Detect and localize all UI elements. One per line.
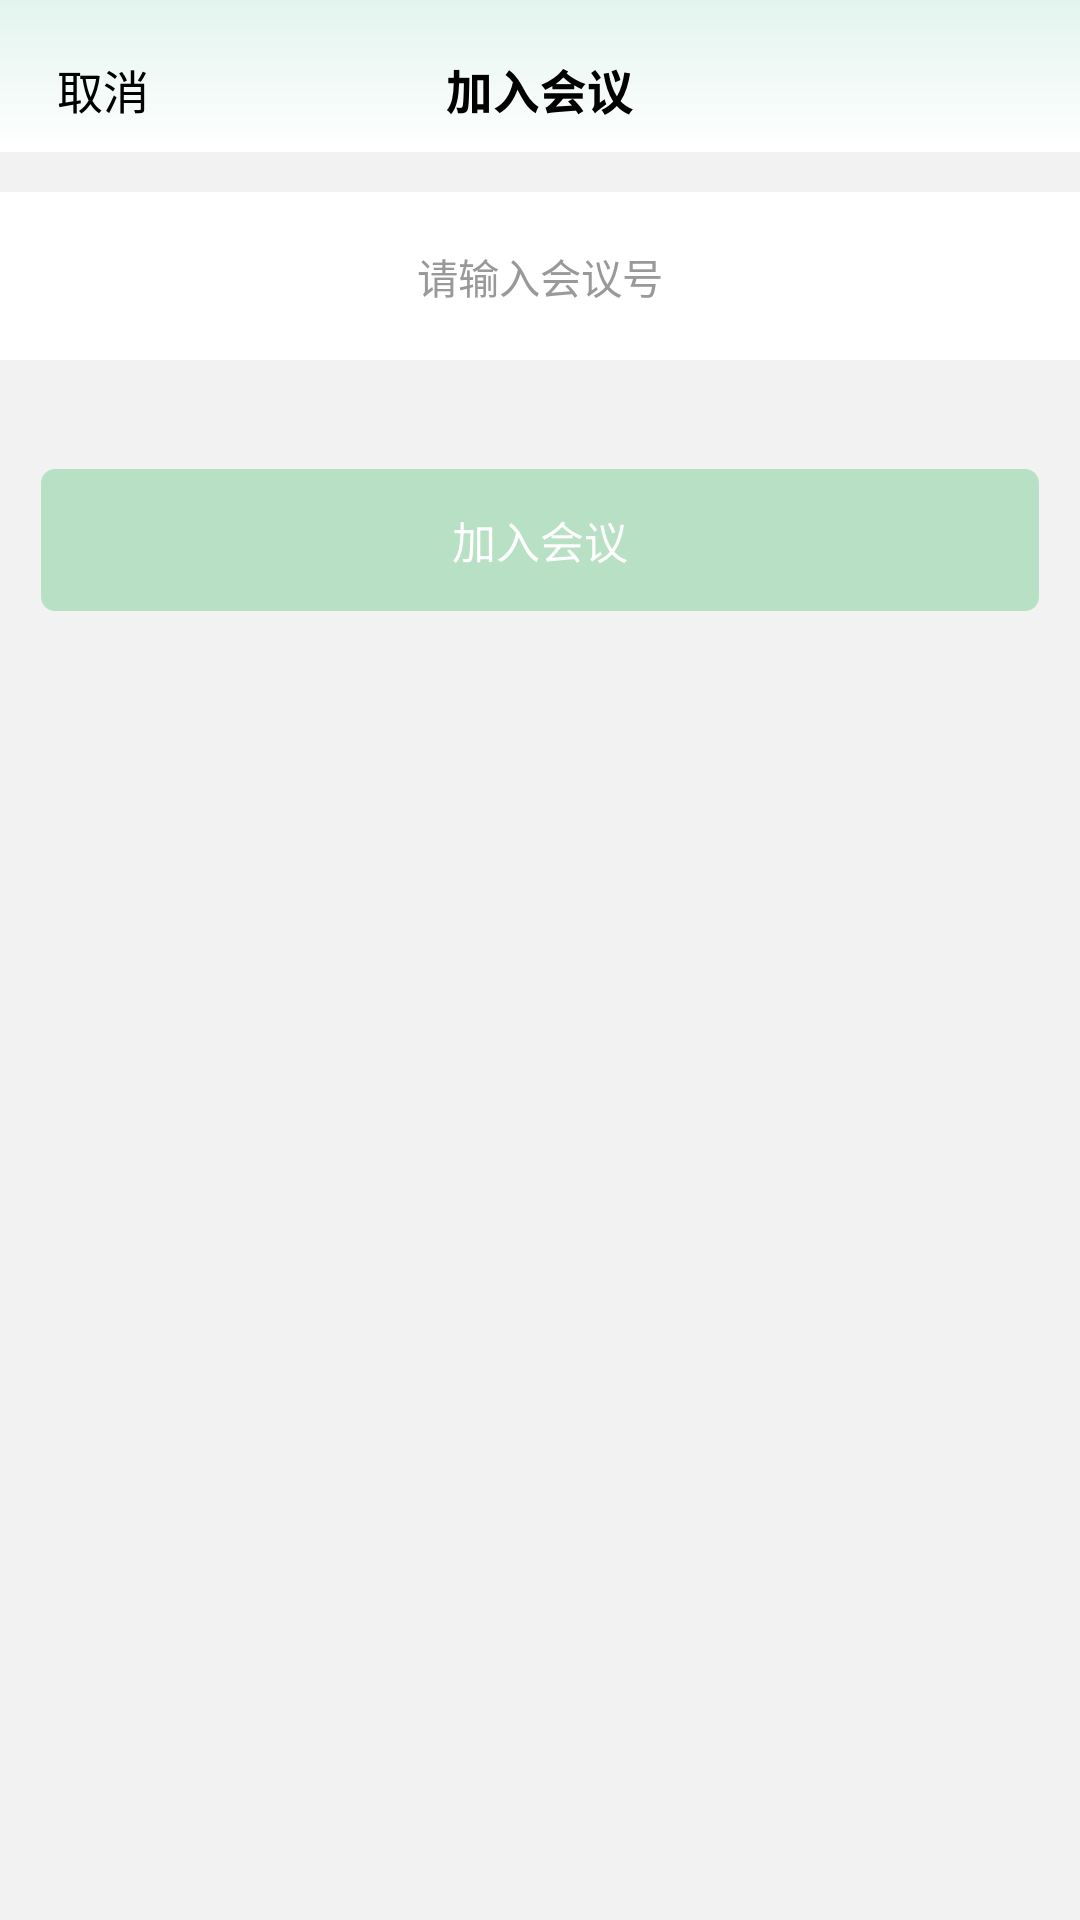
staticText: 加入会议 bbox=[446, 55, 634, 123]
button[interactable]: 取消 bbox=[37, 32, 169, 146]
button[interactable]: 请输入会议号 bbox=[0, 192, 1080, 360]
staticText: 加入会议 bbox=[452, 508, 628, 572]
staticText: 取消 bbox=[57, 56, 149, 122]
button[interactable]: 加入会议 bbox=[41, 469, 1039, 611]
staticText: 请输入会议号 bbox=[417, 246, 663, 306]
